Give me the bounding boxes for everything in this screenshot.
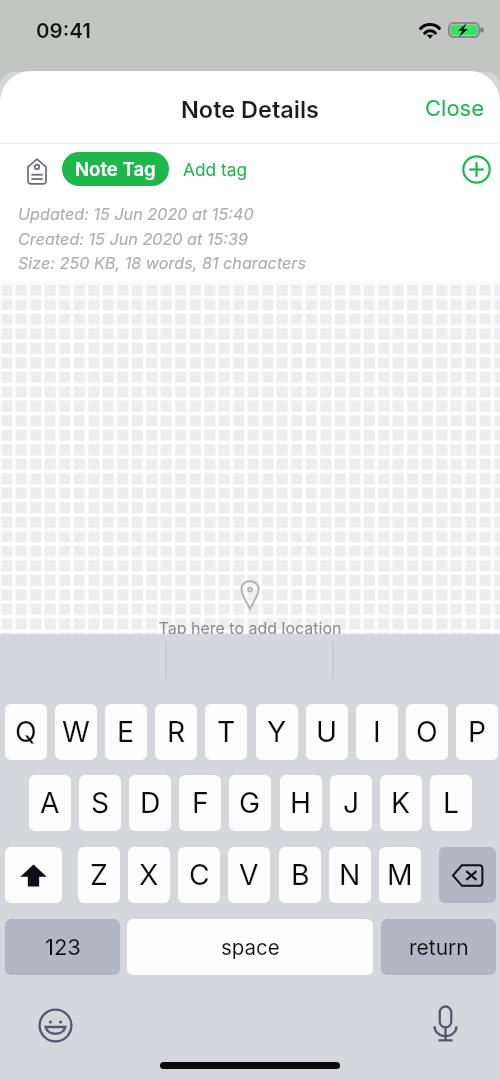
button[interactable]: return (381, 919, 496, 975)
staticText: Created: 15 Jun 2020 at 15:39 (18, 229, 249, 249)
staticText: K (391, 786, 411, 820)
staticText: R (167, 715, 186, 749)
button[interactable]: Backspace (439, 847, 496, 903)
staticText: Y (267, 715, 287, 749)
button[interactable]: J (330, 775, 372, 831)
staticText: Close (425, 95, 485, 122)
button[interactable]: N (329, 847, 371, 903)
staticText: P (468, 715, 487, 749)
button[interactable]: A (29, 775, 71, 831)
staticText: 123 (45, 934, 81, 961)
button[interactable]: U (306, 704, 348, 760)
button[interactable]: Emoji keyboard (36, 1006, 74, 1044)
button[interactable]: Dictation (426, 1005, 464, 1043)
staticText: Q (15, 715, 37, 749)
staticText: X (139, 858, 159, 892)
button[interactable]: V (228, 847, 270, 903)
button[interactable]: Add tag (175, 152, 256, 186)
button[interactable]: H (280, 775, 322, 831)
staticText: space (221, 935, 280, 960)
button[interactable]: F (179, 775, 221, 831)
staticText: S (91, 786, 110, 820)
staticText: D (140, 786, 161, 820)
staticText: O (416, 715, 438, 749)
button[interactable]: Note Tag (62, 152, 169, 186)
button[interactable]: I (356, 704, 398, 760)
staticText: Z (90, 858, 108, 892)
staticText: I (373, 715, 381, 749)
staticText: Note Details (181, 95, 320, 123)
staticText: U (316, 715, 338, 749)
staticText: A (40, 786, 60, 820)
staticText: C (189, 858, 210, 892)
staticText: W (62, 715, 90, 749)
button[interactable]: Shift (5, 847, 62, 903)
button[interactable]: Y (256, 704, 298, 760)
staticText: J (343, 786, 360, 820)
staticText: E (117, 715, 135, 749)
staticText: V (239, 858, 259, 892)
button[interactable]: Add tag (454, 147, 498, 191)
button[interactable]: W (55, 704, 97, 760)
button[interactable]: K (380, 775, 422, 831)
button[interactable]: B (279, 847, 321, 903)
staticText: T (217, 715, 236, 749)
button[interactable]: E (105, 704, 147, 760)
staticText: L (443, 786, 459, 820)
button[interactable]: P (456, 704, 498, 760)
button[interactable]: space (127, 919, 373, 975)
staticText: Tap here to add location (0, 618, 500, 637)
staticText: Size: 250 KB, 18 words, 81 characters (18, 253, 306, 273)
staticText: F (192, 786, 209, 820)
button[interactable]: L (430, 775, 472, 831)
staticText: Note Tag (75, 158, 156, 181)
staticText: H (290, 786, 312, 820)
button[interactable]: Close (407, 84, 500, 131)
staticText: 09:41 (36, 18, 91, 43)
button[interactable]: Q (5, 704, 47, 760)
staticText: M (387, 858, 413, 892)
staticText: Updated: 15 Jun 2020 at 15:40 (18, 204, 254, 224)
button[interactable]: X (128, 847, 170, 903)
button[interactable]: O (406, 704, 448, 760)
staticText: Add tag (183, 159, 248, 180)
button[interactable]: T (205, 704, 247, 760)
button[interactable]: S (79, 775, 121, 831)
button[interactable]: R (155, 704, 197, 760)
button[interactable]: D (129, 775, 171, 831)
button[interactable]: G (229, 775, 271, 831)
button[interactable]: Z (78, 847, 120, 903)
staticText: G (239, 786, 261, 820)
button[interactable]: 123 (5, 919, 120, 975)
button[interactable]: M (379, 847, 421, 903)
staticText: B (291, 858, 310, 892)
button[interactable]: C (178, 847, 220, 903)
staticText: N (339, 858, 361, 892)
staticText: return (409, 935, 469, 960)
